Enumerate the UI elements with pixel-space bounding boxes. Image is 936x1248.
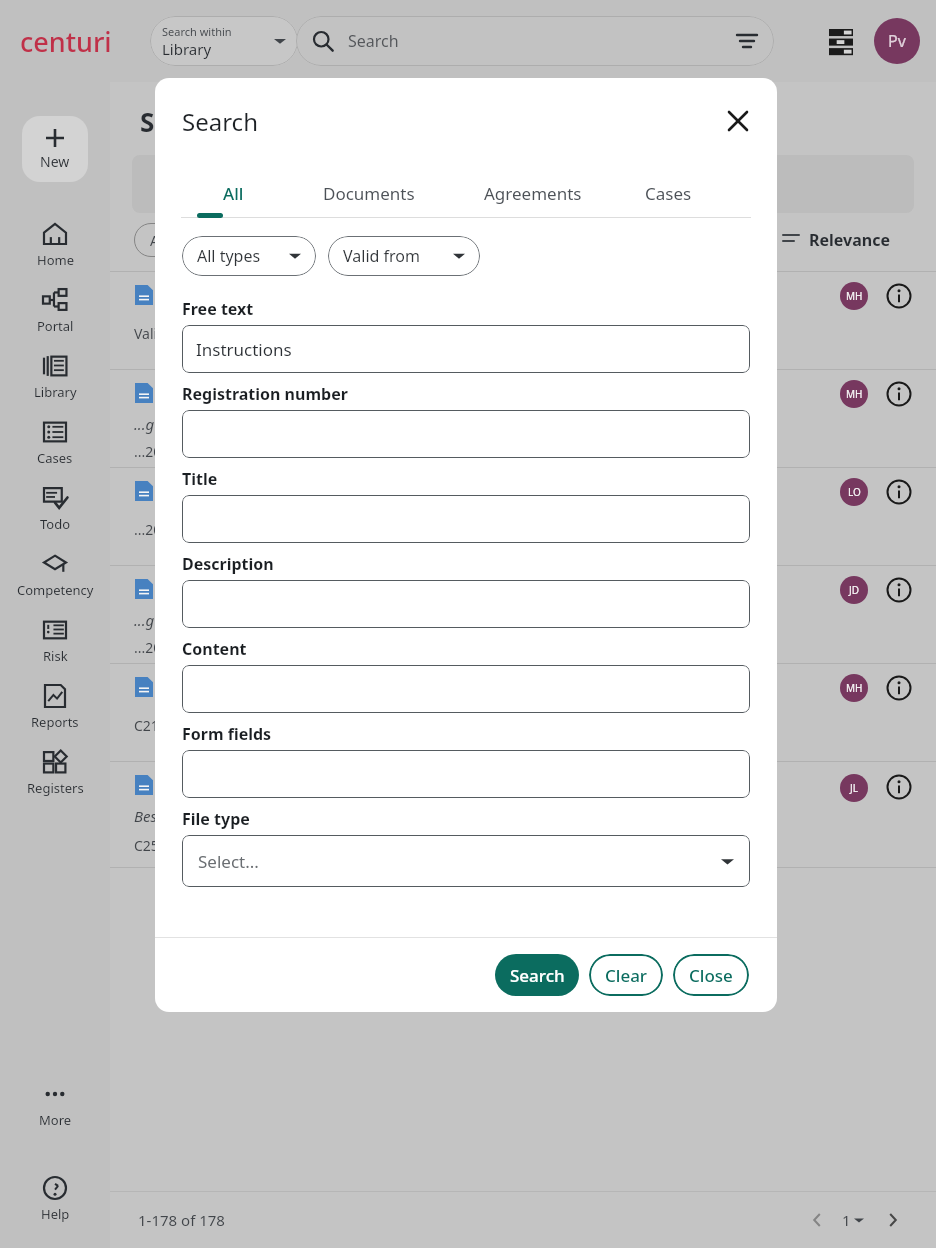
button[interactable]: Instruktion tidsrapportering	[110, 761, 936, 868]
button[interactable]: Instructions	[182, 325, 750, 373]
button[interactable]: Search	[296, 16, 774, 66]
staticText: JL	[850, 781, 858, 795]
button[interactable]	[182, 665, 750, 713]
staticText: Search within	[162, 24, 232, 39]
staticText: Clear	[605, 964, 648, 987]
button[interactable]	[182, 495, 750, 543]
button[interactable]: Home	[0, 212, 110, 278]
staticText: Cases	[645, 182, 692, 205]
button[interactable]: All types	[182, 236, 316, 276]
button[interactable]: Instruktion	[110, 467, 936, 565]
staticText: Form fields	[182, 723, 272, 745]
staticText: Search	[182, 105, 721, 138]
staticText: centuri	[20, 23, 112, 60]
button[interactable]: Documents	[285, 168, 453, 218]
button[interactable]	[182, 750, 750, 798]
button[interactable]: Search within	[150, 16, 298, 66]
staticText: Reports	[31, 713, 79, 731]
staticText: More	[39, 1111, 72, 1129]
staticText: Valid from: ...2022	[134, 324, 253, 343]
staticText: Instruktion	[166, 382, 258, 404]
staticText: Close	[689, 964, 733, 987]
staticText: Instruktion	[166, 676, 258, 698]
other: Info	[886, 774, 912, 800]
staticText: MH	[846, 289, 863, 303]
staticText: Risk	[43, 647, 68, 665]
button[interactable]: Risk	[0, 608, 110, 674]
button[interactable]: Instruktion	[110, 663, 936, 761]
staticText: Library	[162, 39, 212, 59]
button[interactable]: Pv	[874, 18, 920, 64]
button[interactable]	[182, 580, 750, 628]
other: Info	[886, 577, 912, 603]
staticText: Agreements	[484, 182, 582, 205]
staticText: Title	[182, 468, 218, 490]
staticText: Content	[182, 638, 247, 660]
staticText: 1-178 of 178	[138, 1210, 225, 1230]
button[interactable]: Select...	[182, 835, 750, 887]
staticText: 1	[842, 1210, 851, 1230]
button[interactable]: New	[22, 116, 88, 182]
button[interactable]: Close	[673, 954, 749, 996]
button[interactable]: 1	[842, 1210, 864, 1230]
staticText: Free text	[182, 298, 254, 320]
button[interactable]: More	[0, 1072, 110, 1138]
button[interactable]: Instruktion	[110, 369, 936, 467]
other: Info	[886, 675, 912, 701]
staticText: Help	[41, 1205, 70, 1223]
staticText: Documents	[323, 182, 415, 205]
button[interactable]: Todo	[0, 476, 110, 542]
button[interactable]: Previous page	[802, 1205, 832, 1235]
staticText: JD	[849, 583, 860, 597]
button[interactable]: Help	[0, 1166, 110, 1232]
button[interactable]: Al	[134, 223, 178, 257]
staticText: Registration number	[182, 383, 348, 405]
staticText: ...2022	[134, 442, 178, 461]
staticText: Instruktion	[166, 284, 258, 306]
staticText: C25425-1 | Document | Routine/Instructio…	[134, 836, 667, 855]
staticText: Portal	[37, 317, 74, 335]
staticText: All	[223, 182, 244, 205]
button[interactable]: Reports	[0, 674, 110, 740]
other: Info	[886, 283, 912, 309]
button[interactable]	[182, 410, 750, 458]
button[interactable]: View options	[822, 22, 860, 60]
button[interactable]: All	[181, 168, 285, 218]
staticText: Search	[348, 30, 736, 52]
staticText: Valid from	[343, 245, 453, 267]
button[interactable]: Valid from	[328, 236, 480, 276]
button[interactable]: Search	[495, 954, 579, 996]
staticText: Instruktion	[166, 480, 258, 502]
staticText: File type	[182, 808, 250, 830]
staticText: ...2024	[134, 520, 178, 539]
other: Info	[886, 381, 912, 407]
staticText: Select...	[198, 850, 721, 873]
staticText: Todo	[40, 515, 71, 533]
button[interactable]: Agreements	[453, 168, 613, 218]
staticText: MH	[846, 681, 863, 695]
staticText: ...gar och	[134, 414, 197, 434]
staticText: Relevance	[809, 229, 890, 251]
button[interactable]: Clear	[589, 954, 663, 996]
staticText: Description	[182, 553, 274, 575]
other: Filter	[736, 30, 758, 52]
staticText: All types	[197, 245, 289, 267]
button[interactable]: Portal	[0, 278, 110, 344]
staticText: New	[40, 152, 70, 171]
button[interactable]: Competency	[0, 542, 110, 608]
staticText: C21930-3 | Document | Routine/Instructio…	[134, 716, 667, 735]
button[interactable]: Instruktion	[110, 271, 936, 369]
button[interactable]: Library	[0, 344, 110, 410]
staticText: Library	[34, 383, 77, 401]
button[interactable]: Close	[721, 104, 755, 138]
button[interactable]: Next page	[878, 1205, 908, 1235]
button[interactable]: Instruktion	[110, 565, 936, 663]
staticText: Al	[150, 231, 163, 250]
staticText: Registers	[27, 779, 84, 797]
button[interactable]: Registers	[0, 740, 110, 806]
staticText: Home	[37, 251, 74, 269]
button[interactable]: Cases	[613, 168, 723, 218]
staticText: MH	[846, 387, 863, 401]
button[interactable]: Cases	[0, 410, 110, 476]
